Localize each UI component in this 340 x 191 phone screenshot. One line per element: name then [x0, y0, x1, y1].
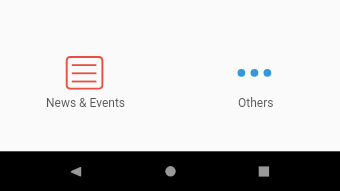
button[interactable]: News & Events — [0, 0, 170, 152]
staticText: News & Events — [46, 96, 126, 110]
button[interactable]: Recents — [243, 151, 283, 191]
staticText: Others — [238, 96, 274, 110]
button[interactable]: Others — [170, 0, 340, 152]
button[interactable]: Back — [56, 151, 96, 191]
button[interactable]: Home — [150, 151, 190, 191]
